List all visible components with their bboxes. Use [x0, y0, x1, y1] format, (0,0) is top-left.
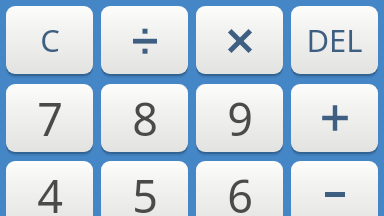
button[interactable]: C — [6, 6, 93, 78]
button[interactable]: Minus — [291, 161, 378, 216]
button[interactable]: 9 — [196, 84, 283, 156]
button[interactable]: Multiply — [196, 6, 283, 78]
button[interactable]: DEL — [291, 6, 378, 78]
button[interactable]: 6 — [196, 161, 283, 216]
staticText: 7 — [37, 88, 63, 149]
button[interactable]: 4 — [6, 161, 93, 216]
button[interactable]: Divide — [101, 6, 188, 78]
button[interactable]: 8 — [101, 84, 188, 156]
staticText: 8 — [132, 88, 158, 149]
staticText: 9 — [227, 88, 253, 149]
staticText: 5 — [132, 165, 158, 216]
button[interactable]: 7 — [6, 84, 93, 156]
button[interactable]: Plus — [291, 84, 378, 156]
staticText: 6 — [227, 165, 253, 216]
staticText: C — [40, 19, 60, 61]
button[interactable]: 5 — [101, 161, 188, 216]
staticText: DEL — [306, 19, 363, 61]
staticText: 4 — [37, 165, 63, 216]
